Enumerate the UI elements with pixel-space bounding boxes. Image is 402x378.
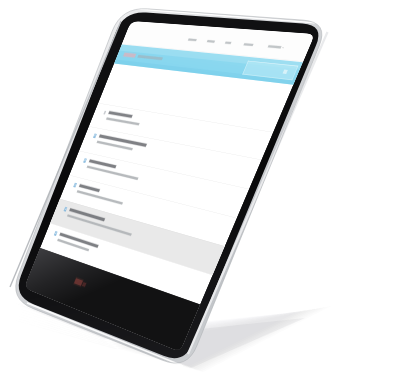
other: Device screen [0,0,402,378]
button[interactable]: Tablet product shot [0,0,402,378]
